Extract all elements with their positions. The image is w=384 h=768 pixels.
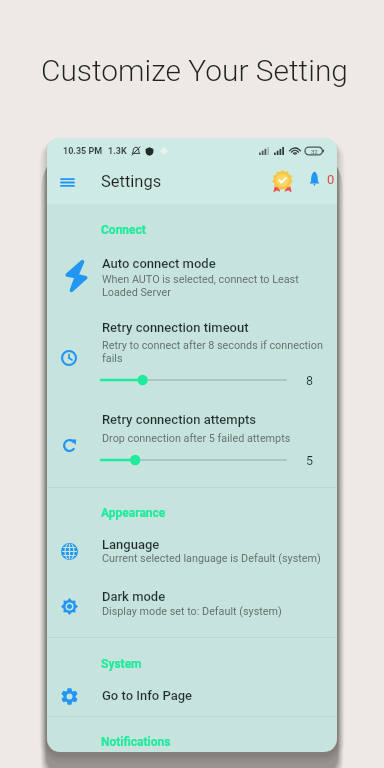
staticText: Appearance [101, 506, 166, 520]
staticText: When AUTO is selected, connect to Least … [102, 273, 299, 299]
staticText: 10.35 PM [63, 146, 103, 157]
staticText: 8 [306, 373, 314, 388]
staticText: Dark mode [102, 589, 166, 604]
staticText: 32 [311, 148, 318, 155]
button[interactable]: Notifications [308, 171, 335, 187]
staticText: Connect [101, 223, 146, 237]
staticText: Language [102, 537, 160, 552]
staticText: 1.3K [108, 146, 127, 157]
staticText: 0 [327, 172, 335, 187]
staticText: 5 [306, 453, 314, 468]
button[interactable]: Open navigation menu [53, 168, 81, 196]
staticText: Display mode set to: Default (system) [102, 605, 282, 618]
staticText: Retry to connect after 8 seconds if conn… [102, 339, 323, 365]
staticText: Retry connection timeout [102, 320, 249, 335]
staticText: Go to Info Page [102, 688, 193, 703]
staticText: Retry connection attempts [102, 412, 257, 427]
staticText: Settings [101, 172, 162, 191]
staticText: Auto connect mode [102, 256, 216, 271]
staticText: Drop connection after 5 failed attempts [102, 432, 291, 445]
button[interactable]: Premium badge [269, 169, 295, 195]
staticText: Customize Your Setting [41, 53, 348, 88]
staticText: Current selected language is Default (sy… [102, 552, 321, 565]
staticText: Notifications [101, 735, 171, 749]
staticText: System [101, 657, 142, 671]
